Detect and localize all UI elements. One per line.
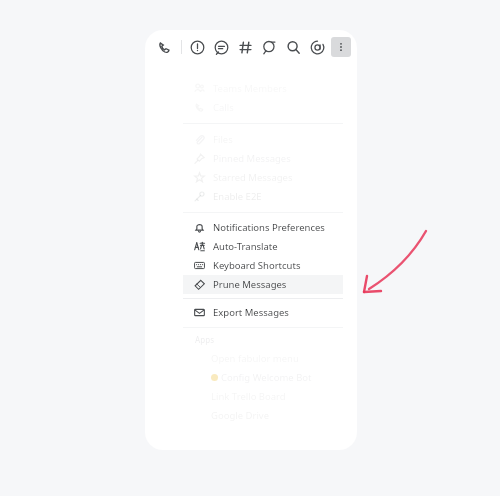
staticText: Export Messages (213, 306, 289, 319)
staticText: Apps (195, 334, 215, 345)
button[interactable]: Discussions (258, 36, 280, 58)
button[interactable]: Search (282, 36, 304, 58)
staticText: Enable E2E (213, 190, 262, 203)
button[interactable]: More options (331, 37, 351, 57)
button[interactable]: Auto-Translate (183, 237, 343, 256)
button[interactable]: Prune Messages (183, 275, 343, 294)
staticText: Starred Messages (213, 171, 293, 184)
button[interactable]: Keyboard Shortcuts (183, 256, 343, 275)
staticText: Keyboard Shortcuts (213, 259, 301, 272)
button[interactable]: Channel info (186, 36, 208, 58)
staticText: Prune Messages (213, 278, 287, 291)
button[interactable]: Mentions (306, 36, 328, 58)
staticText: Pinned Messages (213, 152, 291, 165)
button[interactable]: Call (153, 36, 175, 58)
button[interactable]: Export Messages (183, 303, 343, 322)
button[interactable]: Channels (234, 36, 256, 58)
button[interactable]: Notifications Preferences (183, 218, 343, 237)
staticText: Config Welcome Bot (221, 371, 312, 384)
staticText: Auto-Translate (213, 240, 278, 253)
staticText: Notifications Preferences (213, 221, 325, 234)
button[interactable]: Threads (210, 36, 232, 58)
button[interactable]: Config Welcome Bot (183, 368, 343, 387)
staticText: Google Drive (211, 409, 270, 422)
